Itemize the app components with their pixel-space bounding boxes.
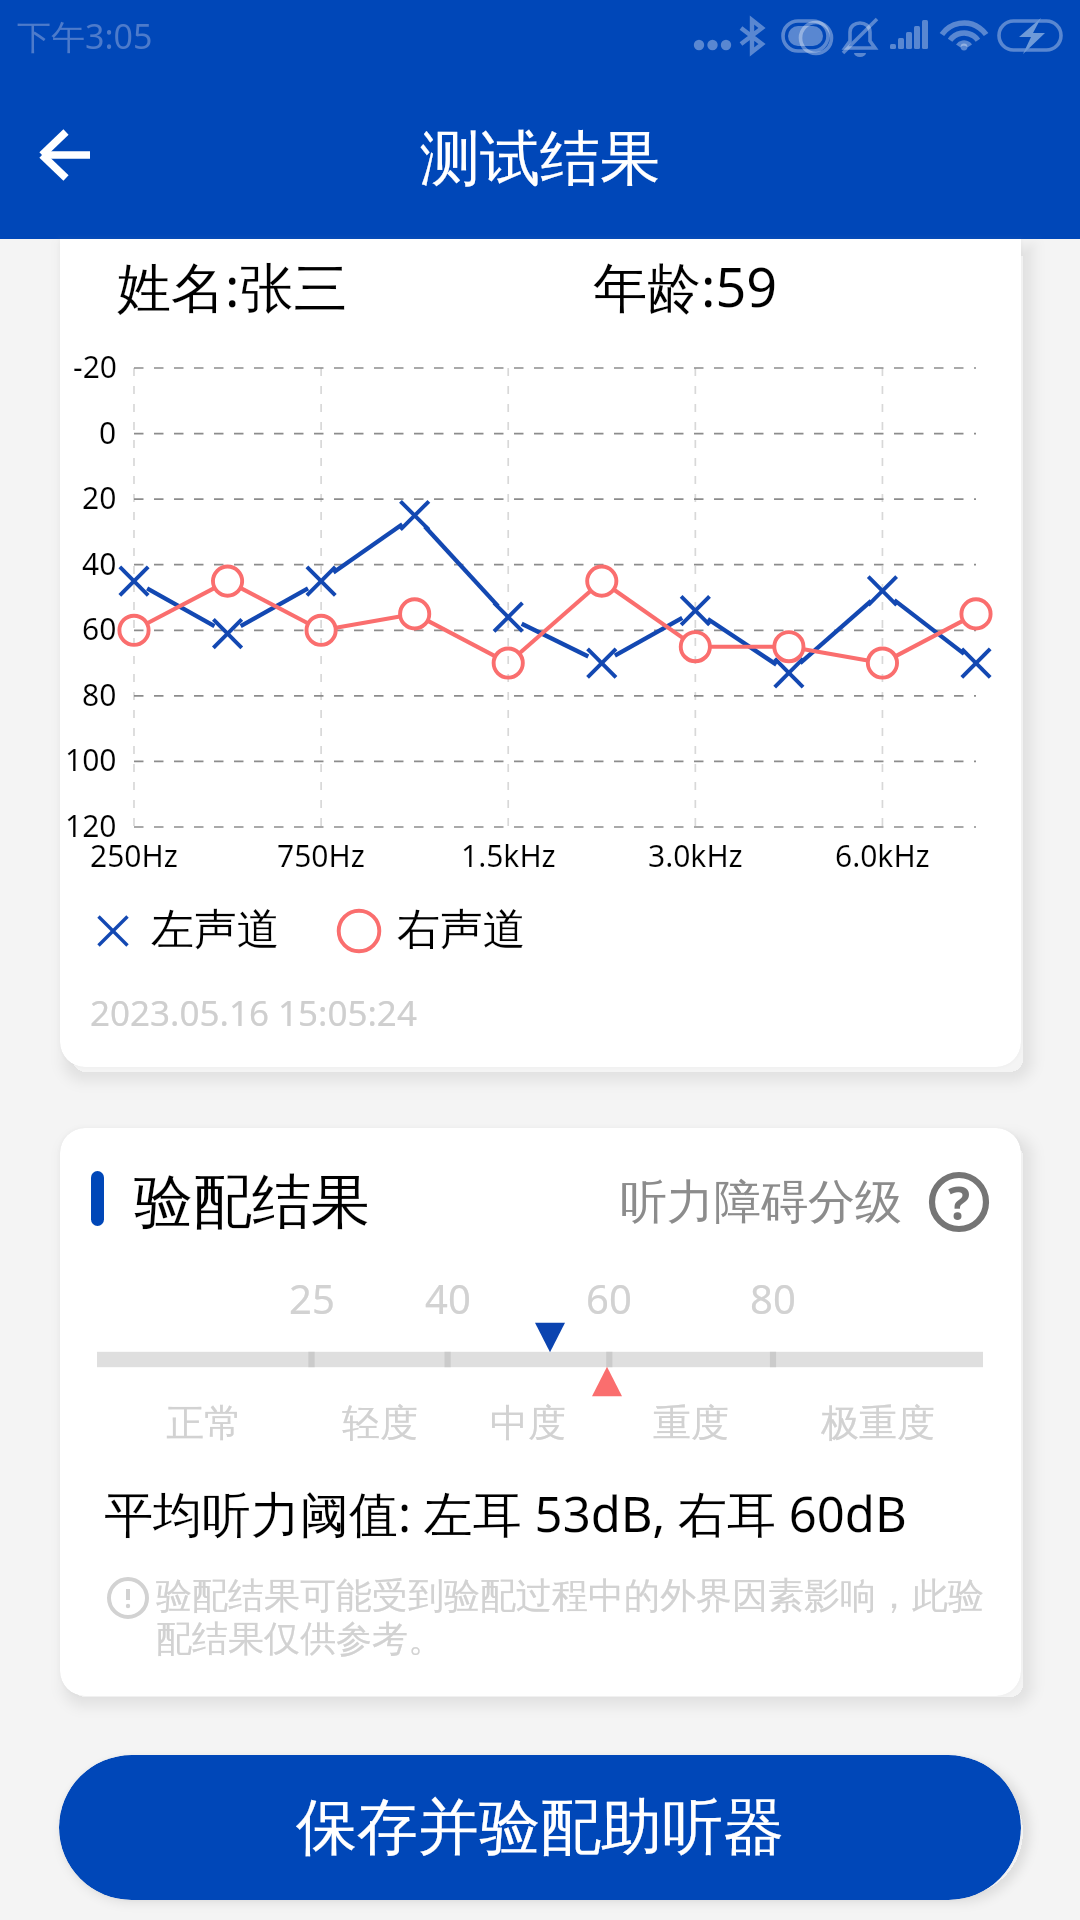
staticText: 正常: [166, 1399, 242, 1447]
staticText: 验配结果可能受到验配过程中的外界因素影响，此验配结果仅供参考。: [156, 1573, 986, 1662]
staticText: 轻度: [342, 1399, 418, 1447]
staticText: 测试结果: [420, 121, 660, 197]
staticText: 右声道: [397, 903, 526, 957]
staticText: 80: [750, 1271, 796, 1325]
staticText: 3.0kHz: [648, 835, 743, 876]
staticText: 年龄:59: [593, 249, 778, 323]
staticText: 6.0kHz: [835, 835, 930, 876]
staticText: 120: [65, 805, 117, 846]
button[interactable]: 听力障碍分级 Help: [620, 1169, 968, 1235]
staticText: 20: [82, 477, 117, 518]
staticText: ?: [948, 1171, 970, 1234]
staticText: 左声道: [151, 903, 280, 957]
staticText: 听力障碍分级: [620, 1173, 902, 1232]
staticText: 平均听力阈值: 左耳 53dB, 右耳 60dB: [104, 1480, 907, 1547]
staticText: 60: [586, 1271, 632, 1325]
staticText: 2023.05.16 15:05:24: [90, 989, 417, 1037]
staticText: 下午3:05: [17, 13, 153, 59]
staticText: 750Hz: [277, 835, 365, 876]
staticText: 验配结果: [134, 1165, 370, 1239]
staticText: 25: [289, 1271, 335, 1325]
button[interactable]: Back: [18, 108, 114, 204]
staticText: 250Hz: [90, 835, 178, 876]
staticText: 40: [82, 543, 117, 584]
staticText: 重度: [653, 1399, 729, 1447]
staticText: 80: [82, 674, 117, 715]
staticText: 40: [425, 1271, 471, 1325]
staticText: 100: [65, 739, 117, 780]
staticText: 中度: [490, 1399, 566, 1447]
staticText: -20: [73, 346, 117, 387]
button[interactable]: 保存并验配助听器: [59, 1755, 1021, 1900]
staticText: 1.5kHz: [461, 835, 556, 876]
staticText: 0: [99, 412, 117, 453]
staticText: 60: [82, 608, 117, 649]
staticText: 保存并验配助听器: [296, 1789, 784, 1866]
staticText: 极重度: [821, 1399, 935, 1447]
staticText: 姓名:张三: [117, 249, 348, 323]
